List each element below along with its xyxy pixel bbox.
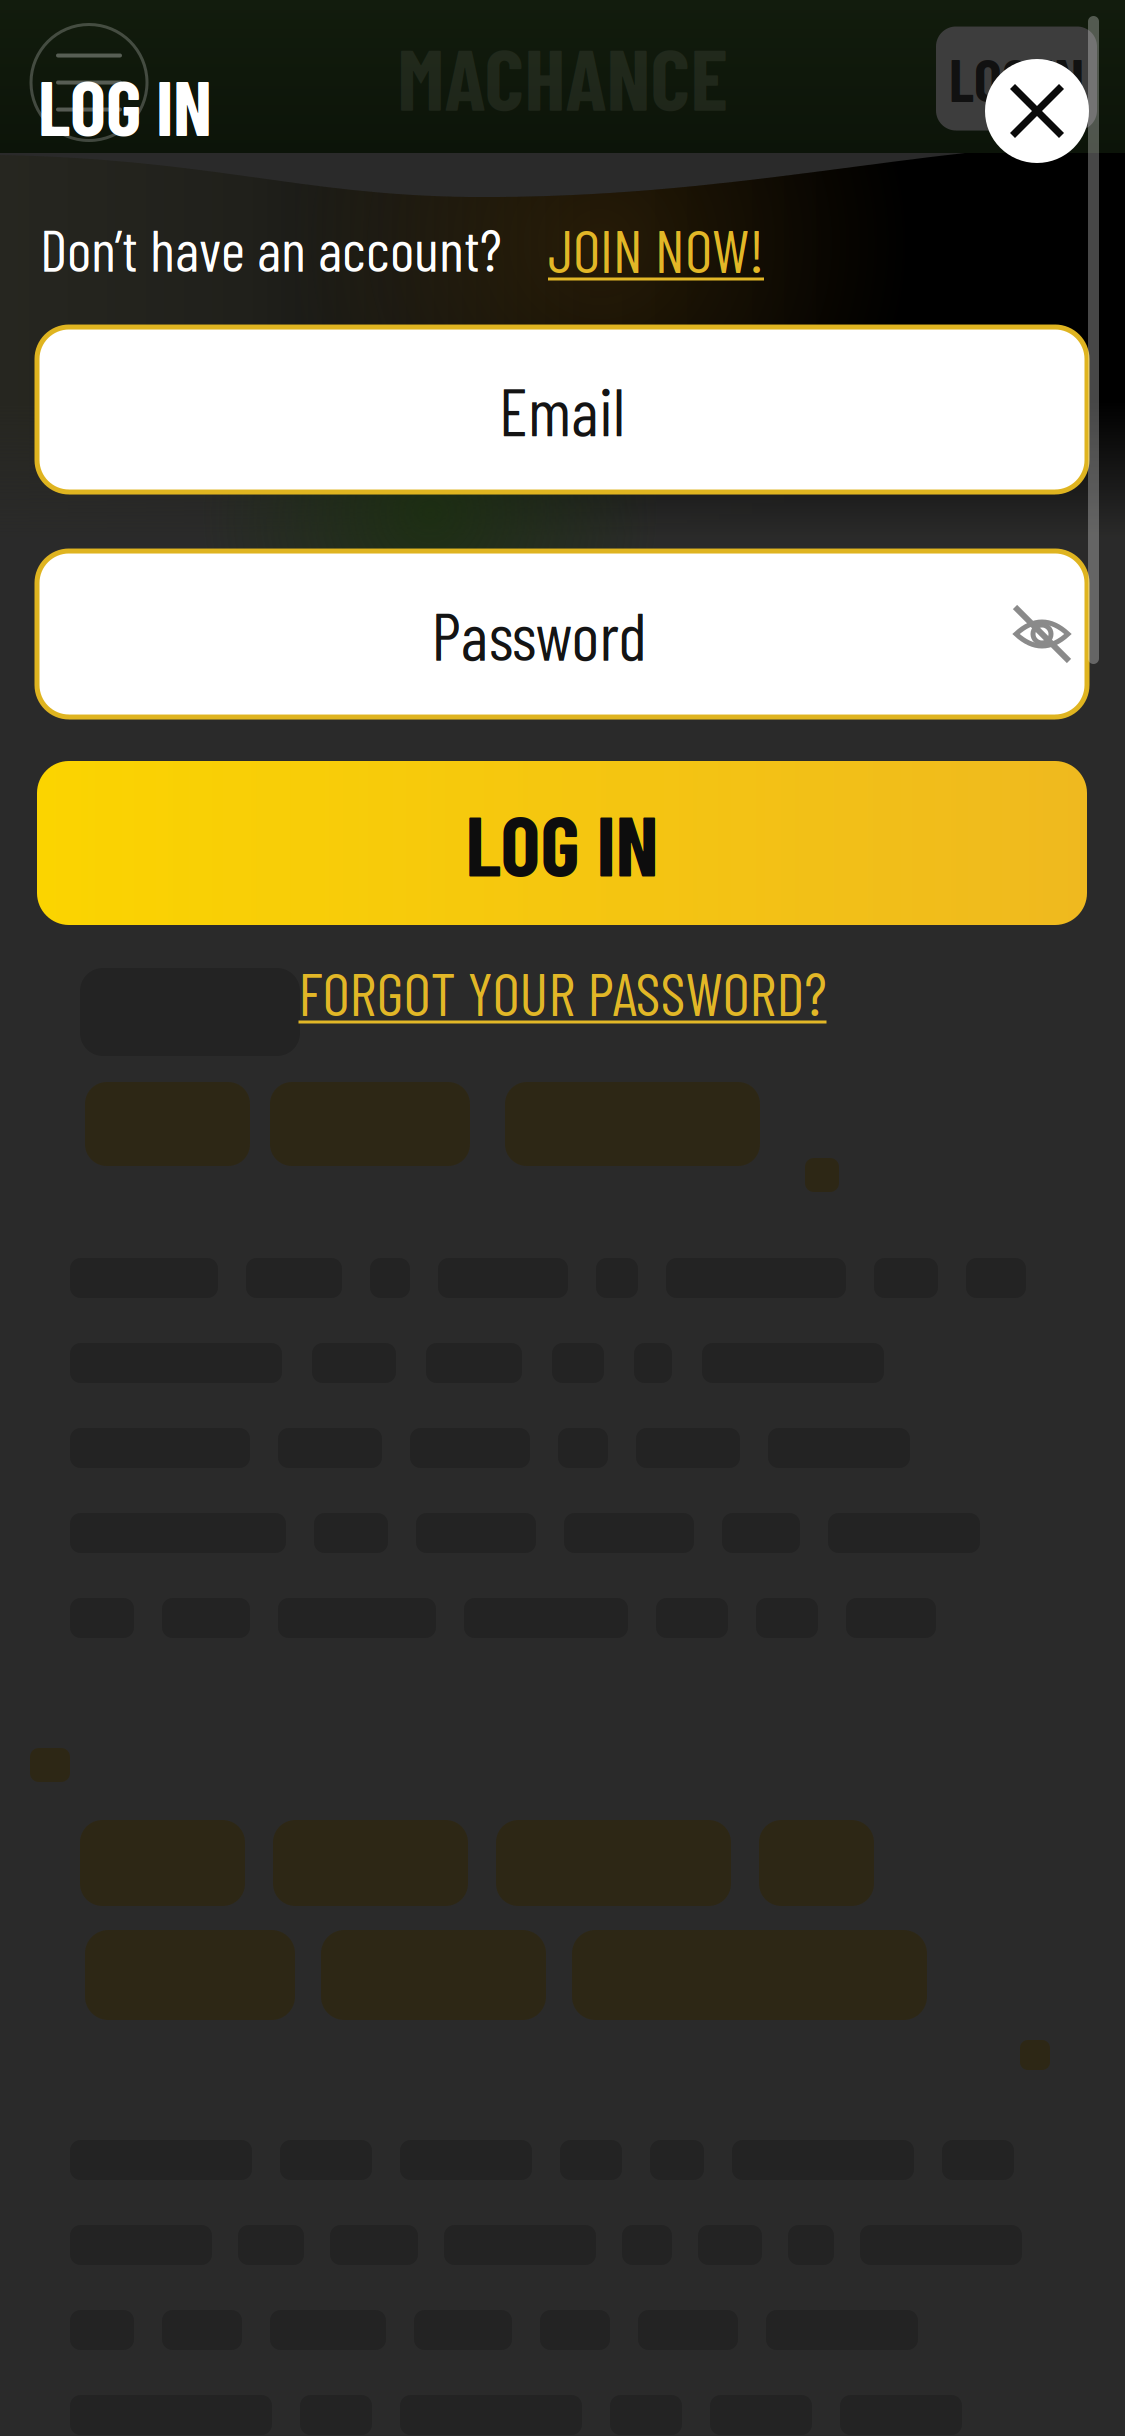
button[interactable]: LOG IN — [37, 761, 1087, 925]
button[interactable]: FORGOT YOUR PASSWORD? — [298, 956, 826, 1028]
staticText: LOG IN — [949, 43, 1084, 114]
staticText: Don’t have an account? — [40, 213, 502, 283]
staticText: MACHANCE — [397, 25, 727, 128]
staticText: JOIN NOW! — [548, 213, 764, 285]
staticText: LOG IN — [465, 793, 658, 893]
button[interactable]: Close — [985, 59, 1089, 163]
staticText: Password — [431, 594, 646, 674]
staticText: Email — [499, 369, 625, 449]
button[interactable]: Show password — [1012, 604, 1072, 664]
button[interactable]: JOIN NOW! — [548, 213, 764, 285]
staticText: LOG IN — [38, 60, 212, 151]
staticText: FORGOT YOUR PASSWORD? — [298, 956, 826, 1028]
